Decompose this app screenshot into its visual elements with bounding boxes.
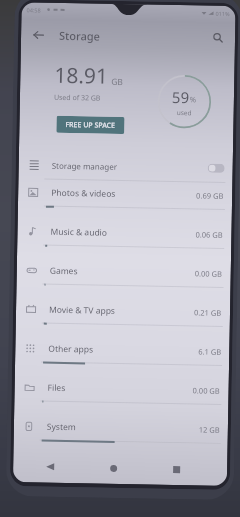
button[interactable]: Movie & TV apps xyxy=(16,296,230,339)
staticText: Photos & videos xyxy=(51,187,116,200)
staticText: used xyxy=(177,108,192,117)
staticText: System xyxy=(47,421,76,433)
staticText: 0.00 GB xyxy=(195,268,223,279)
staticText: 0.06 GB xyxy=(195,229,224,240)
staticText: Other apps xyxy=(48,343,93,355)
button[interactable]: Games xyxy=(16,257,231,300)
staticText: % xyxy=(190,94,197,104)
button[interactable]: Music & audio xyxy=(17,218,232,261)
staticText: Music & audio xyxy=(50,226,108,239)
staticText: 0.00 GB xyxy=(192,385,221,396)
staticText: FREE UP SPACE xyxy=(65,120,115,131)
button[interactable]: Search xyxy=(207,27,229,49)
staticText: 04:58 xyxy=(26,6,42,13)
staticText: 0.21 GB xyxy=(194,307,222,318)
button[interactable]: Storage manager xyxy=(18,150,233,182)
button[interactable]: FREE UP SPACE xyxy=(56,116,125,134)
button[interactable]: Back xyxy=(38,454,62,479)
staticText: GB xyxy=(111,76,123,88)
button[interactable]: System xyxy=(13,413,228,456)
button[interactable]: Back xyxy=(27,23,49,46)
staticText: 011% xyxy=(215,10,230,17)
button[interactable]: Photos & videos xyxy=(18,179,232,222)
staticText: 59 xyxy=(172,87,190,107)
staticText: Games xyxy=(50,265,78,277)
staticText: Storage xyxy=(59,28,100,43)
button[interactable]: Home xyxy=(101,456,125,480)
staticText: 0.69 GB xyxy=(196,190,224,201)
button[interactable]: Recents xyxy=(164,457,188,481)
button[interactable]: Other apps xyxy=(15,335,230,378)
staticText: Used of 32 GB xyxy=(54,93,101,104)
staticText: Movie & TV apps xyxy=(49,304,115,317)
staticText: 6.1 GB xyxy=(198,346,221,357)
staticText: Storage manager xyxy=(52,160,118,172)
staticText: Files xyxy=(47,382,66,394)
button[interactable]: Files xyxy=(14,374,229,417)
staticText: 12 GB xyxy=(199,424,220,435)
staticText: 18.91 xyxy=(54,61,109,91)
